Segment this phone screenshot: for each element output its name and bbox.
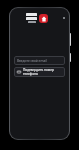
staticText: Подтвердить номер телефона [23,68,62,76]
staticText: Введите свой email [17,59,47,63]
button[interactable]: Введите свой email [14,56,65,65]
button[interactable]: Logo [39,14,48,23]
button[interactable]: Подтвердить номер телефона [14,67,65,77]
button[interactable] [26,13,37,23]
